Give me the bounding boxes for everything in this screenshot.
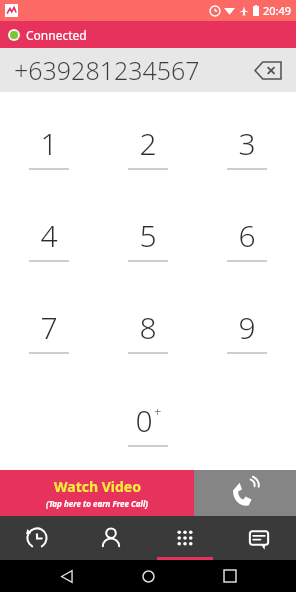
button[interactable]: Home <box>133 561 163 591</box>
button[interactable]: 7 <box>12 284 86 377</box>
button[interactable]: Back <box>52 561 82 591</box>
staticText: Watch Video <box>54 477 141 496</box>
staticText: 9 <box>238 307 256 348</box>
staticText: 4 <box>40 215 58 256</box>
staticText: + <box>154 403 162 421</box>
staticText: 2 <box>139 123 157 164</box>
button[interactable]: Messages <box>222 516 296 560</box>
button[interactable]: 2 <box>111 100 185 192</box>
button[interactable]: 6 <box>210 192 284 284</box>
button[interactable]: Backspace <box>248 50 288 90</box>
staticText: (Tap here to earn Free Call) <box>46 498 149 509</box>
button[interactable]: Contacts <box>74 516 148 560</box>
staticText: 0 <box>135 400 153 441</box>
staticText: 7 <box>40 307 58 348</box>
staticText: 8 <box>139 307 157 348</box>
button[interactable]: Recents <box>215 561 245 591</box>
button[interactable]: Connected <box>0 21 296 48</box>
button[interactable]: Watch Video <box>0 470 194 516</box>
button[interactable]: Dialpad <box>148 516 222 560</box>
button[interactable]: 4 <box>12 192 86 284</box>
button[interactable]: 1 <box>12 100 86 192</box>
button[interactable]: Recents <box>0 516 74 560</box>
button[interactable]: 0 <box>111 377 185 470</box>
staticText: +639281234567 <box>14 53 200 87</box>
staticText: 3 <box>238 123 256 164</box>
button[interactable]: 8 <box>111 284 185 377</box>
button[interactable]: Call <box>194 470 296 516</box>
button[interactable]: 3 <box>210 100 284 192</box>
staticText: Connected <box>26 27 87 43</box>
staticText: 6 <box>238 215 256 256</box>
staticText: 20:49 <box>263 3 292 18</box>
button[interactable]: 5 <box>111 192 185 284</box>
button[interactable]: 9 <box>210 284 284 377</box>
staticText: 5 <box>139 215 157 256</box>
staticText: 1 <box>40 123 58 164</box>
